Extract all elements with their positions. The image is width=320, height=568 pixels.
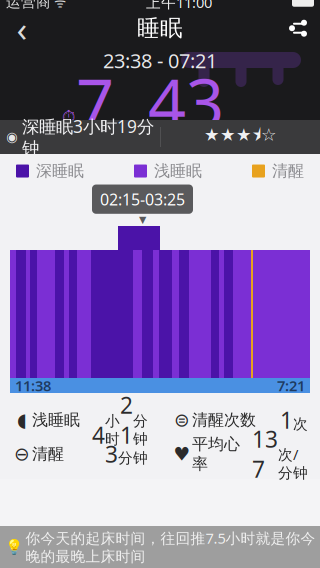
staticText: 清醒 xyxy=(272,161,304,181)
staticText: 你今天的起床时间，往回推7.5小时就是你今晚的最晚上床时间 xyxy=(25,528,315,566)
staticText: ♥ xyxy=(173,443,190,465)
staticText: 浅睡眠 xyxy=(154,161,202,181)
staticText: 小时 xyxy=(105,412,120,448)
staticText: 4 xyxy=(92,420,105,450)
staticText: 运营商 xyxy=(6,0,51,11)
staticText: 平均心率 xyxy=(192,434,240,474)
staticText: 浅睡眠 xyxy=(32,410,80,430)
staticText: 3 xyxy=(105,439,118,469)
staticText: 43 xyxy=(148,57,224,146)
staticText: 次/分钟 xyxy=(278,445,308,482)
staticText: 分钟 xyxy=(133,412,148,448)
staticText: 137 xyxy=(252,424,278,484)
staticText: ⊖ xyxy=(14,443,30,465)
staticText: 分钟 xyxy=(224,120,258,141)
staticText: 次 xyxy=(293,415,308,433)
staticText: 21 xyxy=(120,390,133,450)
button[interactable]: 分享 xyxy=(276,12,320,44)
staticText: 23:38 - 07:21 xyxy=(103,47,217,74)
button[interactable]: ◉ xyxy=(0,120,160,154)
staticText: ⊜ xyxy=(174,409,190,431)
staticText: 深睡眠3小时19分钟 xyxy=(22,115,154,159)
staticText: 分钟 xyxy=(118,449,148,467)
staticText: 02:15-03:25 xyxy=(100,189,185,210)
button[interactable]: 返回 xyxy=(0,12,44,44)
staticText: ★★★⯨☆ xyxy=(204,123,277,151)
staticText: 小时 xyxy=(114,120,148,141)
staticText: ◉ xyxy=(6,129,18,144)
staticText: ▾ xyxy=(139,211,146,227)
staticText: 睡眠 xyxy=(137,14,183,42)
staticText: ⏱ xyxy=(62,109,76,126)
staticText: 💡 xyxy=(4,539,22,555)
staticText: 1 xyxy=(280,405,293,435)
staticText: 11:38 xyxy=(15,376,51,395)
button[interactable]: 睡眠评分 3.5 星 xyxy=(161,120,320,154)
staticText: 7 xyxy=(76,57,114,146)
staticText: 深睡眠 xyxy=(36,161,84,181)
staticText: 上午11:00 xyxy=(146,0,212,12)
staticText: 清醒 xyxy=(32,444,64,464)
staticText: ‹ xyxy=(16,5,27,51)
staticText: ◖ xyxy=(17,409,27,431)
staticText: 清醒次数 xyxy=(192,410,256,430)
staticText: 7:21 xyxy=(277,376,305,395)
staticText: ᯤ xyxy=(51,0,66,11)
